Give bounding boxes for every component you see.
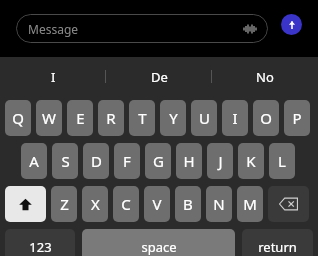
button[interactable]: S xyxy=(52,143,78,179)
button[interactable]: Z xyxy=(51,186,77,222)
staticText: A xyxy=(29,151,39,171)
other: Voice message xyxy=(242,22,258,36)
button[interactable]: V xyxy=(144,186,170,222)
staticText: M xyxy=(243,194,257,214)
button[interactable]: Q xyxy=(5,100,31,136)
staticText: V xyxy=(152,194,162,214)
staticText: P xyxy=(292,108,302,128)
staticText: X xyxy=(91,194,100,214)
button[interactable]: J xyxy=(207,143,233,179)
staticText: U xyxy=(199,108,210,128)
button[interactable]: 123 xyxy=(5,229,75,256)
button[interactable]: De xyxy=(106,57,212,96)
button[interactable]: L xyxy=(269,143,295,179)
button[interactable]: O xyxy=(253,100,279,136)
staticText: O xyxy=(260,108,272,128)
button[interactable]: K xyxy=(238,143,264,179)
staticText: K xyxy=(246,151,256,171)
button[interactable]: Backspace xyxy=(268,186,309,222)
staticText: D xyxy=(91,151,102,171)
staticText: De xyxy=(151,68,168,86)
button[interactable]: A xyxy=(21,143,47,179)
button[interactable]: B xyxy=(175,186,201,222)
button[interactable]: Shift xyxy=(5,186,46,222)
button[interactable]: Message xyxy=(16,14,268,43)
button[interactable]: Send xyxy=(281,14,302,35)
button[interactable]: P xyxy=(284,100,310,136)
button[interactable]: M xyxy=(237,186,263,222)
staticText: I xyxy=(51,68,56,86)
button[interactable]: E xyxy=(67,100,93,136)
button[interactable]: I xyxy=(0,57,106,96)
button[interactable]: H xyxy=(176,143,202,179)
button[interactable]: R xyxy=(98,100,124,136)
staticText: G xyxy=(153,151,164,171)
button[interactable]: No xyxy=(212,57,318,96)
button[interactable]: I xyxy=(222,100,248,136)
button[interactable]: X xyxy=(82,186,108,222)
button[interactable]: N xyxy=(206,186,232,222)
staticText: W xyxy=(42,108,56,128)
staticText: space xyxy=(141,238,177,256)
button[interactable]: F xyxy=(114,143,140,179)
staticText: J xyxy=(218,151,223,171)
staticText: T xyxy=(138,108,147,128)
button[interactable]: W xyxy=(36,100,62,136)
staticText: N xyxy=(213,194,225,214)
staticText: C xyxy=(121,194,131,214)
staticText: 123 xyxy=(29,238,52,256)
staticText: I xyxy=(232,108,238,128)
staticText: No xyxy=(256,68,274,86)
staticText: Z xyxy=(60,194,69,214)
button[interactable]: U xyxy=(191,100,217,136)
button[interactable]: Y xyxy=(160,100,186,136)
staticText: H xyxy=(183,151,195,171)
button[interactable]: G xyxy=(145,143,171,179)
staticText: return xyxy=(258,238,297,256)
staticText: Q xyxy=(12,108,24,128)
staticText: L xyxy=(278,151,286,171)
button[interactable]: space xyxy=(82,229,235,256)
staticText: B xyxy=(183,194,193,214)
staticText: R xyxy=(106,108,116,128)
staticText: Message xyxy=(28,21,79,37)
button[interactable]: C xyxy=(113,186,139,222)
staticText: Y xyxy=(169,108,178,128)
button[interactable]: return xyxy=(242,229,313,256)
staticText: F xyxy=(123,151,131,171)
button[interactable]: T xyxy=(129,100,155,136)
button[interactable]: D xyxy=(83,143,109,179)
staticText: E xyxy=(76,108,85,128)
staticText: S xyxy=(61,151,70,171)
